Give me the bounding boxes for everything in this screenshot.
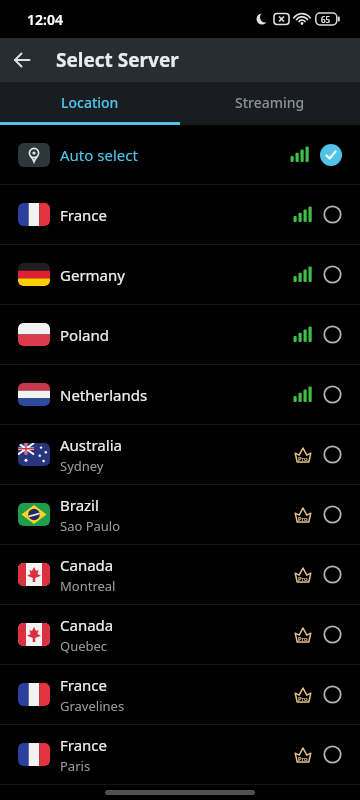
staticText: Brazil bbox=[60, 495, 99, 515]
staticText: Gravelines bbox=[60, 697, 125, 715]
button[interactable]: Brazil bbox=[0, 485, 360, 545]
button[interactable]: Germany bbox=[0, 245, 360, 305]
staticText: France bbox=[60, 205, 108, 225]
staticText: France bbox=[60, 675, 108, 695]
button[interactable]: Australia bbox=[0, 425, 360, 485]
staticText: Location bbox=[61, 93, 119, 112]
staticText: Pro bbox=[298, 515, 308, 523]
button[interactable]: Poland bbox=[0, 305, 360, 365]
staticText: Pro bbox=[298, 575, 308, 583]
staticText: Pro bbox=[298, 635, 308, 643]
button[interactable] bbox=[0, 38, 44, 82]
button[interactable]: Canada bbox=[0, 605, 360, 665]
staticText: Select Server bbox=[56, 47, 179, 73]
staticText: Montreal bbox=[60, 577, 116, 595]
staticText: Quebec bbox=[60, 637, 108, 655]
staticText: Canada bbox=[60, 555, 114, 575]
staticText: Pro bbox=[298, 455, 308, 463]
button[interactable]: France bbox=[0, 665, 360, 725]
staticText: France bbox=[60, 735, 108, 755]
staticText: Netherlands bbox=[60, 385, 148, 405]
staticText: Poland bbox=[60, 325, 109, 345]
button[interactable]: Auto select bbox=[0, 125, 360, 185]
staticText: Germany bbox=[60, 265, 125, 285]
staticText: Pro bbox=[298, 755, 308, 763]
staticText: Canada bbox=[60, 615, 114, 635]
staticText: Australia bbox=[60, 435, 122, 455]
staticText: Streaming bbox=[235, 93, 305, 112]
button[interactable]: Streaming bbox=[180, 82, 360, 122]
staticText: Pro bbox=[298, 695, 308, 703]
button[interactable]: Netherlands bbox=[0, 365, 360, 425]
button[interactable]: Canada bbox=[0, 545, 360, 605]
staticText: Paris bbox=[60, 757, 91, 775]
staticText: Sao Paulo bbox=[60, 517, 121, 535]
staticText: Auto select bbox=[60, 145, 138, 165]
button[interactable]: Location bbox=[0, 82, 180, 122]
staticText: 12:04 bbox=[27, 10, 63, 29]
staticText: 65 bbox=[321, 14, 331, 25]
button[interactable]: France bbox=[0, 725, 360, 785]
button[interactable]: France bbox=[0, 185, 360, 245]
staticText: Sydney bbox=[60, 457, 104, 475]
